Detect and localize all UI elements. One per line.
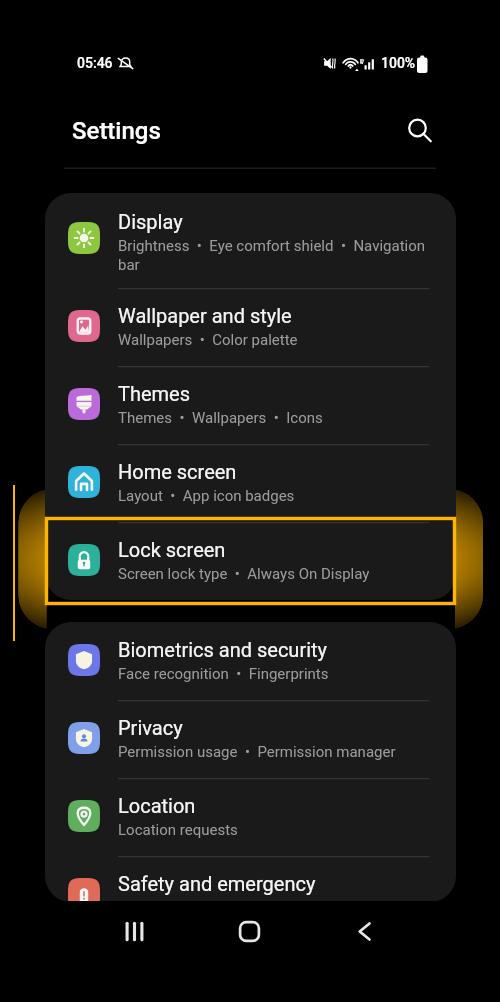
staticText: Layout • App icon badges (118, 487, 431, 505)
staticText: Lock screen (118, 538, 226, 561)
button[interactable]: Location (45, 778, 456, 856)
staticText: Themes (118, 382, 191, 405)
staticText: Privacy (118, 716, 183, 739)
staticText: Wallpaper and style (118, 304, 292, 327)
staticText: Location (118, 794, 196, 817)
staticText: Permission usage • Permission manager (118, 743, 431, 761)
staticText: Biometrics and security (118, 638, 328, 661)
button[interactable]: Home (221, 903, 278, 960)
staticText: Settings (72, 117, 161, 145)
staticText: Home screen (118, 460, 237, 483)
staticText: Location requests (118, 821, 431, 839)
button[interactable]: Recent apps (106, 903, 163, 960)
staticText: 100% (381, 55, 416, 71)
staticText: Face recognition • Fingerprints (118, 665, 431, 683)
staticText: Display (118, 210, 183, 233)
button[interactable]: Display (45, 193, 456, 288)
staticText: Brightness • Eye comfort shield • Naviga… (118, 237, 431, 274)
button[interactable]: Biometrics and security (45, 622, 456, 700)
button[interactable]: Wallpaper and style (45, 288, 456, 366)
button[interactable]: Back (331, 903, 388, 960)
staticText: 05:46 (77, 55, 113, 71)
staticText: Wallpapers • Color palette (118, 331, 431, 349)
button[interactable]: Home screen (45, 444, 456, 522)
button[interactable]: Themes (45, 366, 456, 444)
staticText: Safety and emergency (118, 872, 316, 895)
staticText: Screen lock type • Always On Display (118, 565, 431, 583)
button[interactable]: Lock screen (45, 522, 456, 600)
staticText: Themes • Wallpapers • Icons (118, 409, 431, 427)
staticText: Emergency SOS • Medical info (118, 899, 431, 902)
button[interactable]: Search (400, 110, 436, 146)
button[interactable]: Privacy (45, 700, 456, 778)
button[interactable]: Safety and emergency (45, 856, 456, 902)
